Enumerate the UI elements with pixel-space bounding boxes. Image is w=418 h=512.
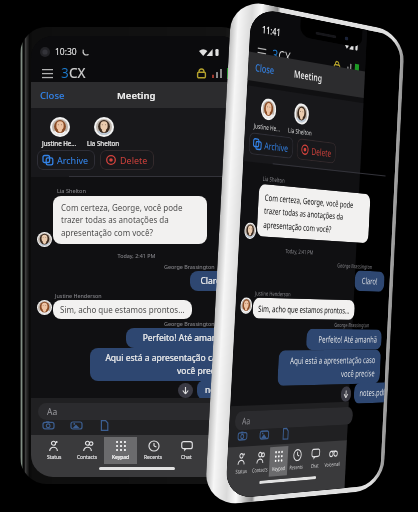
staticText: Lia Shelton xyxy=(288,125,313,137)
staticText: Justine He… xyxy=(253,120,281,133)
staticText: George Brassington xyxy=(334,321,370,328)
staticText: Lia Shelton xyxy=(57,187,86,195)
button[interactable]: Aa xyxy=(234,407,353,430)
staticText: Claro! xyxy=(197,275,227,287)
staticText: Archive xyxy=(264,138,289,154)
staticText: CX xyxy=(278,46,292,67)
button[interactable]: Attach file xyxy=(99,420,110,431)
staticText: Delete xyxy=(120,154,148,166)
button[interactable]: Voicemail xyxy=(323,443,343,472)
staticText: George Brassington xyxy=(337,261,373,270)
staticText: Justine Henderson xyxy=(55,292,102,299)
staticText: George Brassington xyxy=(164,320,215,327)
staticText: Recents xyxy=(289,463,304,472)
staticText: Today, 2:41 PM xyxy=(31,252,242,259)
button[interactable]: Archive xyxy=(248,132,294,159)
staticText: Aqui está a apresentação caso você preci… xyxy=(98,352,226,377)
staticText: Status xyxy=(47,454,62,461)
staticText: Perfeito! Até amanhã xyxy=(311,333,377,346)
button[interactable]: Keypad xyxy=(269,446,288,477)
staticText: Voicemail xyxy=(208,454,231,461)
staticText: Today, 2:41 PM xyxy=(238,244,356,258)
button[interactable]: Status xyxy=(231,448,252,480)
button[interactable]: Aa xyxy=(38,403,235,420)
button[interactable]: Archive xyxy=(37,150,95,170)
staticText: Chat xyxy=(181,454,192,461)
staticText: Claro! xyxy=(359,275,380,288)
staticText: Sim, acho que estamos prontos… xyxy=(60,304,185,315)
staticText: Chat xyxy=(311,462,319,470)
staticText: 11:41 xyxy=(262,22,281,40)
button[interactable]: Chat xyxy=(170,437,203,464)
staticText: Sim, acho que estamos prontos… xyxy=(258,302,350,316)
button[interactable]: Keypad xyxy=(104,437,137,464)
staticText: Delete xyxy=(311,144,332,159)
staticText: Perfeito! Até amanhã xyxy=(133,332,227,344)
staticText: Contacts xyxy=(77,454,98,461)
button[interactable]: Camera xyxy=(43,420,54,431)
staticText: Aa xyxy=(242,414,251,428)
button[interactable]: Camera xyxy=(238,430,247,443)
button[interactable]: Delete xyxy=(100,150,154,170)
staticText: Keypad xyxy=(112,454,129,461)
staticText: Lia Shelton xyxy=(262,174,285,185)
staticText: 10:30 xyxy=(55,46,77,58)
button[interactable]: Attach file xyxy=(281,428,290,440)
staticText: Keypad xyxy=(272,465,285,473)
staticText: Com certeza, George, você pode trazer to… xyxy=(61,202,199,238)
button[interactable]: Delete xyxy=(296,138,336,164)
button[interactable]: Download xyxy=(340,386,352,402)
button[interactable]: Gallery xyxy=(71,420,82,431)
staticText: Justine He… xyxy=(42,139,77,147)
staticText: notes.pdf xyxy=(205,384,242,396)
button[interactable]: Voicemail xyxy=(203,437,236,464)
button[interactable]: Gallery xyxy=(260,429,269,441)
button[interactable]: Close xyxy=(31,89,74,102)
staticText: Com certeza, George, você pode trazer to… xyxy=(263,191,365,237)
button[interactable]: Download xyxy=(178,383,193,398)
staticText: Meeting xyxy=(294,67,323,85)
button[interactable]: Contacts xyxy=(71,437,104,464)
button[interactable]: Menu xyxy=(40,66,54,80)
staticText: CX xyxy=(69,64,86,82)
staticText: Contacts xyxy=(252,466,268,475)
staticText: Justine Henderson xyxy=(255,289,291,297)
button[interactable]: Status xyxy=(37,437,71,464)
staticText: Aa xyxy=(47,406,58,418)
staticText: George Brassington xyxy=(164,263,215,270)
staticText: notes.pdf xyxy=(359,386,385,399)
staticText: Lia Shelton xyxy=(87,139,120,147)
staticText: 3 xyxy=(272,45,279,65)
button[interactable]: Recents xyxy=(137,437,170,464)
staticText: Voicemail xyxy=(324,460,341,469)
button[interactable]: Close xyxy=(248,59,282,79)
staticText: Archive xyxy=(57,154,89,166)
staticText: Recents xyxy=(144,454,163,461)
button[interactable]: Recents xyxy=(287,445,307,475)
button[interactable]: Menu xyxy=(256,44,267,61)
staticText: Status xyxy=(235,467,248,476)
staticText: 3 xyxy=(61,64,69,82)
staticText: Aqui está a apresentação caso você preci… xyxy=(283,354,375,381)
button[interactable]: Chat xyxy=(305,444,325,474)
staticText: Meeting xyxy=(117,89,156,102)
button[interactable]: Contacts xyxy=(250,447,270,478)
